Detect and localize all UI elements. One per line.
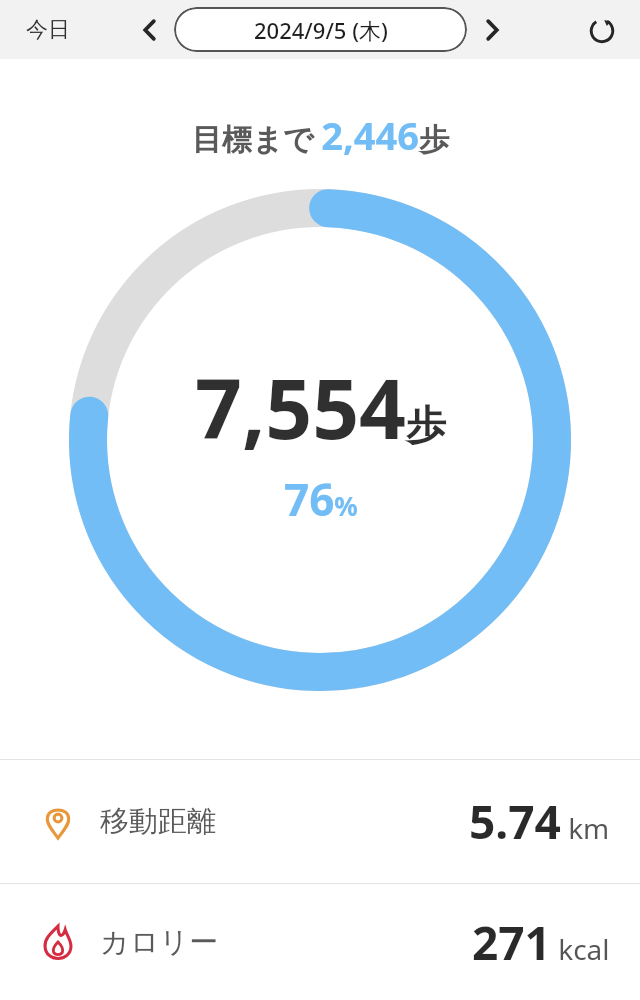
button[interactable]: 次の日	[470, 8, 514, 52]
button[interactable]: カロリー	[0, 884, 640, 1000]
staticText: カロリー	[100, 924, 219, 961]
button[interactable]: 2024/9/5 (木)	[174, 7, 467, 52]
button[interactable]: 今日	[18, 10, 78, 50]
staticText: 5.74 km	[469, 790, 610, 853]
staticText: 移動距離	[100, 803, 216, 840]
staticText: 今日	[26, 16, 70, 44]
staticText: 2024/9/5 (木)	[254, 15, 388, 45]
staticText: 76%	[284, 469, 358, 529]
staticText: 7,554歩	[195, 351, 446, 463]
button[interactable]: 前の日	[128, 8, 172, 52]
staticText: 271 kcal	[472, 911, 610, 974]
staticText: 目標まで 2,446歩	[192, 109, 449, 161]
button[interactable]: 更新	[578, 6, 626, 54]
button[interactable]: 移動距離	[0, 760, 640, 883]
